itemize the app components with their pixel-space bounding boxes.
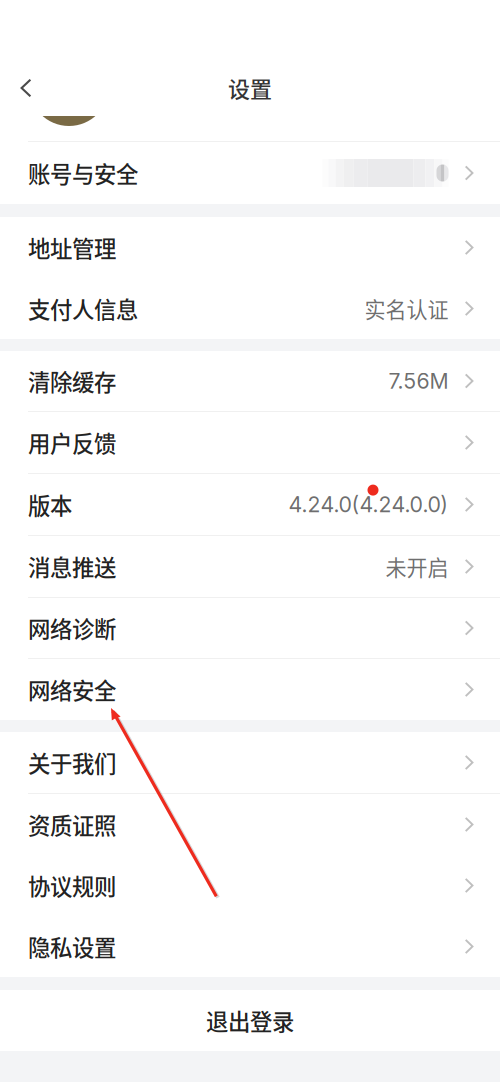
button[interactable]: 退出登录 bbox=[0, 990, 500, 1051]
staticText: 4.24.0(4.24.0.0) bbox=[288, 492, 448, 517]
staticText: 清除缓存 bbox=[28, 365, 116, 397]
button[interactable]: 地址管理 bbox=[0, 217, 500, 278]
staticText: 资质证照 bbox=[28, 808, 116, 841]
staticText: 版本 bbox=[28, 488, 72, 521]
staticText: 未开启 bbox=[385, 551, 448, 582]
staticText: 实名认证 bbox=[364, 293, 448, 324]
button[interactable]: 协议规则 bbox=[0, 855, 500, 916]
staticText: 账号与安全 bbox=[28, 157, 138, 189]
button[interactable]: 网络诊断 bbox=[0, 598, 500, 658]
button[interactable]: 用户反馈 bbox=[0, 412, 500, 473]
button[interactable]: 消息推送 bbox=[0, 536, 500, 597]
staticText: 网络诊断 bbox=[28, 612, 116, 644]
staticText: 用户反馈 bbox=[28, 426, 116, 459]
button[interactable]: 清除缓存 bbox=[0, 351, 500, 411]
staticText: 隐私设置 bbox=[28, 930, 116, 963]
staticText: 消息推送 bbox=[28, 550, 116, 583]
staticText: 协议规则 bbox=[28, 869, 116, 902]
button[interactable]: 支付人信息 bbox=[0, 278, 500, 339]
staticText: 地址管理 bbox=[28, 231, 116, 264]
staticText: 7.56M bbox=[388, 368, 448, 394]
staticText: 退出登录 bbox=[206, 1004, 294, 1037]
button[interactable]: 关于我们 bbox=[0, 732, 500, 793]
staticText: 支付人信息 bbox=[28, 292, 138, 325]
staticText: 关于我们 bbox=[28, 746, 116, 779]
button[interactable]: 隐私设置 bbox=[0, 916, 500, 977]
button[interactable]: 账号与安全 bbox=[0, 142, 500, 204]
staticText: 网络安全 bbox=[28, 673, 116, 706]
button[interactable]: 版本 bbox=[0, 474, 500, 535]
button[interactable]: Back bbox=[4, 66, 48, 110]
staticText: 设置 bbox=[228, 72, 272, 104]
button[interactable]: 网络安全 bbox=[0, 659, 500, 720]
button[interactable]: 资质证照 bbox=[0, 794, 500, 855]
